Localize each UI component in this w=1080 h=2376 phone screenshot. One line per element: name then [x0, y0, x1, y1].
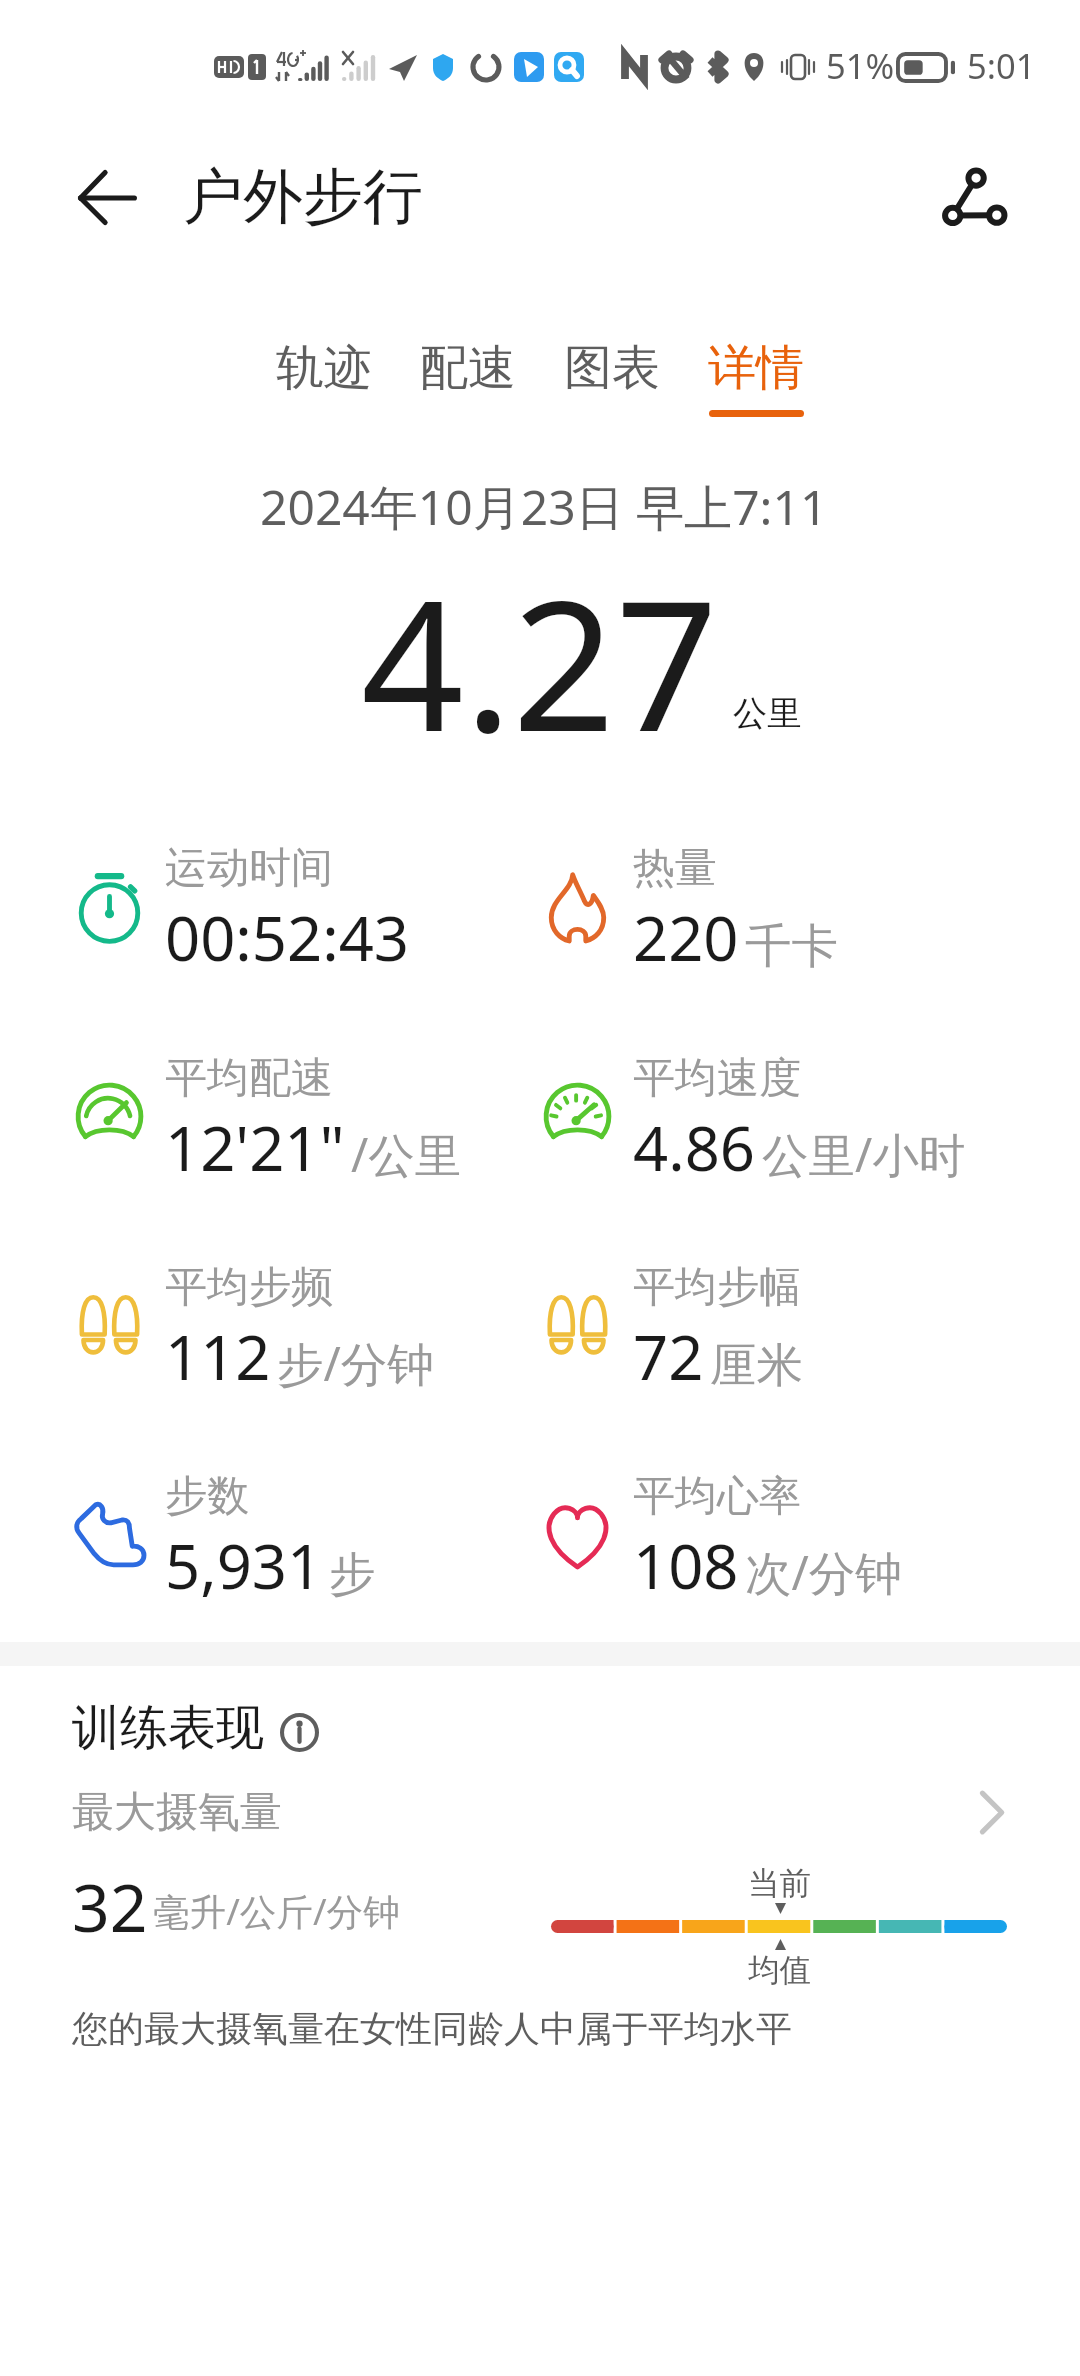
staticText: 均值 [748, 1951, 811, 1991]
button[interactable]: 配速 [396, 338, 540, 417]
button[interactable]: Back [44, 134, 170, 260]
staticText: 公里 [733, 692, 802, 735]
staticText: 平均配速 [165, 1052, 333, 1105]
staticText: 108 [633, 1523, 739, 1607]
staticText: 51% [826, 42, 895, 89]
staticText: 户外步行 [183, 159, 423, 235]
staticText: 训练表现 [72, 1698, 264, 1758]
button[interactable]: Share [912, 134, 1038, 260]
staticText: 步/分钟 [277, 1331, 434, 1395]
staticText: 平均步频 [165, 1261, 333, 1314]
staticText: 厘米 [710, 1336, 803, 1395]
staticText: 公里/小时 [762, 1122, 966, 1186]
staticText: 72 [633, 1314, 704, 1398]
staticText: 当前 [748, 1864, 811, 1904]
button[interactable]: 最大摄氧量 [0, 1773, 1080, 1851]
staticText: 图表 [564, 338, 660, 398]
staticText: 轨迹 [276, 338, 372, 398]
staticText: 热量 [633, 842, 717, 895]
staticText: 4.27 [361, 539, 719, 784]
button[interactable]: 图表 [540, 338, 684, 417]
staticText: 00:52:43 [165, 895, 410, 979]
staticText: 112 [165, 1314, 271, 1398]
staticText: 平均速度 [633, 1052, 801, 1105]
staticText: 平均心率 [633, 1470, 801, 1523]
staticText: /公里 [351, 1122, 462, 1186]
button[interactable]: Info [271, 1700, 328, 1757]
staticText: 次/分钟 [745, 1540, 902, 1604]
staticText: 配速 [420, 338, 516, 398]
staticText: 毫升/公斤/分钟 [153, 1886, 400, 1936]
staticText: 32 [72, 1861, 148, 1951]
staticText: 步 [329, 1545, 376, 1604]
staticText: 千卡 [745, 917, 838, 976]
button[interactable]: 详情 [684, 338, 828, 417]
staticText: 运动时间 [165, 842, 333, 895]
staticText: 最大摄氧量 [72, 1786, 282, 1839]
staticText: 步数 [165, 1470, 249, 1523]
button[interactable]: 轨迹 [252, 338, 396, 417]
staticText: 您的最大摄氧量在女性同龄人中属于平均水平 [72, 2006, 792, 2051]
staticText: 2024年10月23日 早上7:11 [260, 474, 828, 540]
staticText: 5,931 [165, 1523, 323, 1607]
staticText: 220 [633, 895, 739, 979]
staticText: 4.86 [633, 1105, 756, 1189]
staticText: 详情 [708, 338, 804, 398]
staticText: 12'21" [165, 1105, 345, 1189]
staticText: 5:01 [967, 42, 1036, 89]
staticText: 平均步幅 [633, 1261, 801, 1314]
